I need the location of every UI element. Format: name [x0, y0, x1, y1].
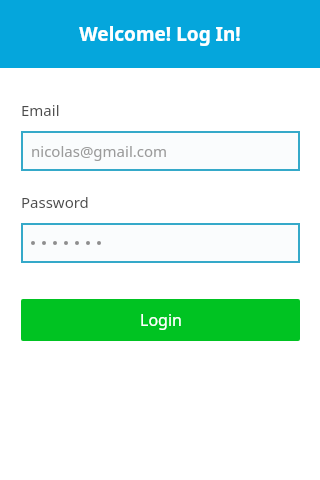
staticText: Welcome! Log In! [79, 21, 241, 47]
staticText: Email [21, 100, 60, 120]
button[interactable]: nicolas@gmail.com [21, 131, 300, 171]
button[interactable]: Password field [21, 223, 300, 263]
staticText: nicolas@gmail.com [31, 141, 168, 161]
staticText: Login [140, 309, 182, 331]
staticText: Password [21, 192, 89, 212]
button[interactable]: Login [21, 299, 300, 341]
